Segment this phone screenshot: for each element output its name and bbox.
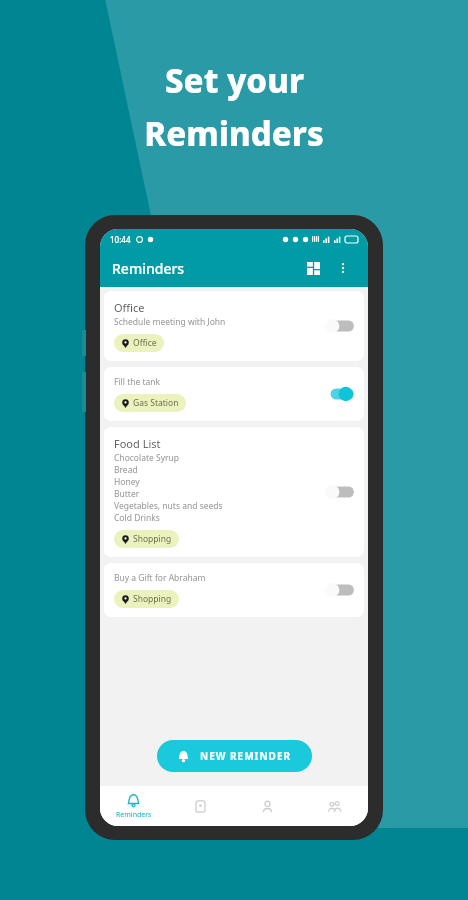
staticText: Cold Drinks xyxy=(114,512,160,524)
staticText: Honey xyxy=(114,476,140,488)
staticText: Reminders xyxy=(112,259,185,278)
staticText: NEW REMINDER xyxy=(200,749,292,763)
staticText: Shopping xyxy=(133,533,172,545)
button[interactable]: Tab xyxy=(234,786,301,826)
button[interactable]: Fill the tank xyxy=(104,367,364,421)
button[interactable]: Food List xyxy=(104,427,364,557)
staticText: Schedule meeting with John xyxy=(114,316,226,328)
staticText: Butter xyxy=(114,488,140,500)
button[interactable]: More options xyxy=(330,255,356,281)
button[interactable]: Reminders xyxy=(100,786,167,826)
button[interactable]: Office xyxy=(114,334,164,352)
staticText: 10:44 xyxy=(110,234,131,245)
button[interactable]: Buy a Gift for Abraham xyxy=(104,563,364,617)
button[interactable]: Toggle off xyxy=(324,317,354,335)
button[interactable]: Grid layout xyxy=(300,255,326,281)
button[interactable]: Tab xyxy=(301,786,368,826)
staticText: Chocolate Syrup xyxy=(114,452,180,464)
staticText: Set your xyxy=(165,58,304,103)
button[interactable]: Shopping xyxy=(114,590,179,608)
staticText: Reminders xyxy=(116,810,152,820)
staticText: Reminders xyxy=(144,111,324,156)
staticText: Shopping xyxy=(133,593,172,605)
staticText: Gas Station xyxy=(133,397,179,409)
button[interactable]: Toggle on xyxy=(324,385,354,403)
button[interactable]: Shopping xyxy=(114,530,179,548)
staticText: Fill the tank xyxy=(114,376,161,388)
button[interactable]: Gas Station xyxy=(114,394,186,412)
button[interactable]: NEW REMINDER xyxy=(157,740,312,772)
button[interactable]: Office xyxy=(104,291,364,361)
staticText: Food List xyxy=(114,436,161,451)
staticText: Office xyxy=(133,337,157,349)
staticText: Vegetables, nuts and seeds xyxy=(114,500,223,512)
staticText: Bread xyxy=(114,464,138,476)
button[interactable]: Toggle off xyxy=(324,483,354,501)
staticText: Office xyxy=(114,300,145,315)
button[interactable]: Toggle off xyxy=(324,581,354,599)
staticText: Buy a Gift for Abraham xyxy=(114,572,206,584)
button[interactable]: Tab xyxy=(167,786,234,826)
